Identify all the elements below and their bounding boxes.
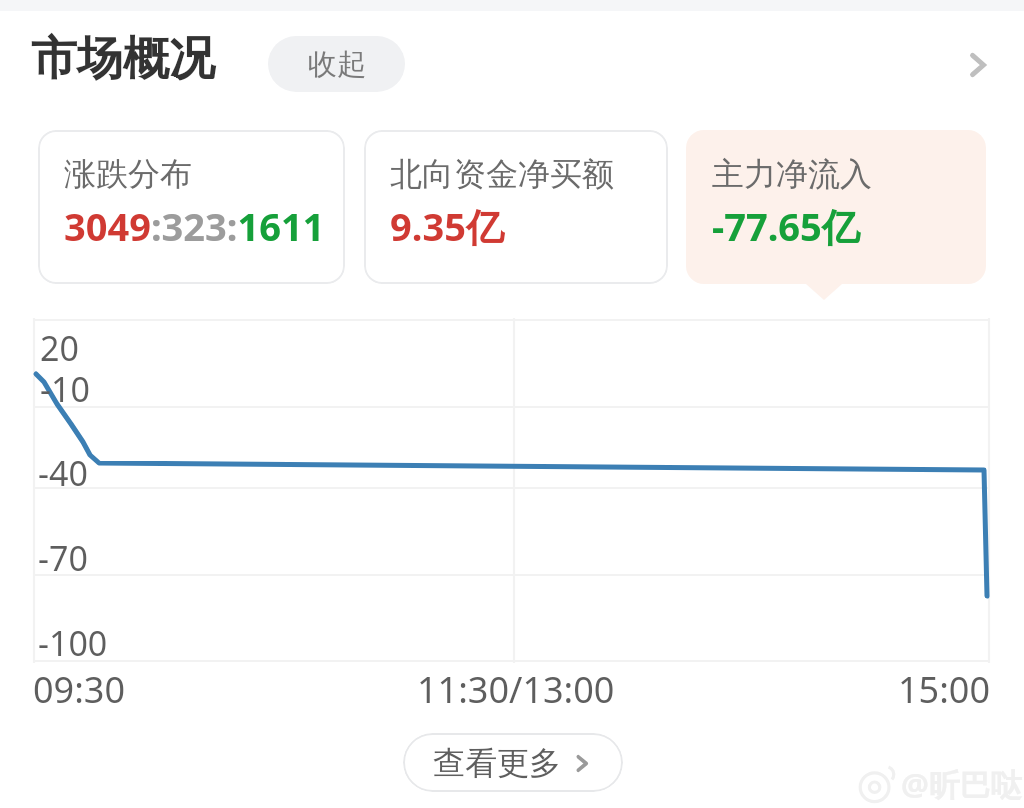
staticText: 主力净流入: [712, 154, 872, 194]
staticText: @昕巴哒: [901, 763, 1022, 805]
button[interactable]: 北向资金净买额: [364, 130, 668, 284]
button[interactable]: 市场概况: [31, 24, 249, 94]
staticText: -77.65亿: [712, 200, 860, 252]
staticText: 9.35亿: [390, 200, 504, 252]
staticText: 查看更多: [433, 743, 561, 783]
staticText: 涨跌分布: [64, 154, 192, 194]
button[interactable]: 查看更多: [403, 733, 623, 792]
staticText: 09:30: [33, 665, 126, 714]
staticText: 北向资金净买额: [390, 154, 614, 194]
button[interactable]: 收起: [268, 36, 405, 92]
staticText: 20: [40, 325, 79, 371]
button[interactable]: 主力净流入: [686, 130, 986, 284]
button[interactable]: 展开更多: [949, 36, 1007, 94]
staticText: 收起: [308, 46, 366, 83]
button[interactable]: 涨跌分布: [38, 130, 345, 284]
staticText: -70: [38, 535, 88, 581]
staticText: 市场概况: [31, 30, 215, 88]
staticText: -10: [40, 366, 90, 412]
staticText: 15:00: [898, 665, 991, 714]
staticText: 3049:323:1611: [64, 200, 325, 252]
staticText: -100: [38, 620, 108, 666]
staticText: -40: [38, 450, 88, 496]
staticText: 11:30/13:00: [417, 665, 615, 714]
